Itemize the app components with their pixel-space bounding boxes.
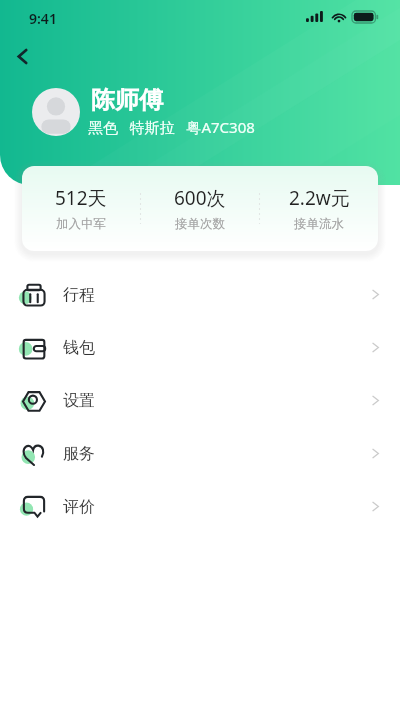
button[interactable]: 钱包	[0, 321, 400, 374]
staticText: 2.2w元	[289, 185, 350, 211]
staticText: 服务	[63, 444, 95, 464]
staticText: 9:41	[29, 9, 57, 28]
staticText: 600次	[174, 185, 226, 211]
button[interactable]: 设置	[0, 374, 400, 427]
button[interactable]: 评价	[0, 480, 400, 533]
staticText: 接单流水	[294, 216, 344, 232]
staticText: 512天	[55, 185, 107, 211]
button[interactable]: 服务	[0, 427, 400, 480]
staticText: 接单次数	[175, 216, 225, 232]
staticText: 行程	[63, 285, 95, 305]
staticText: 加入中军	[56, 216, 106, 232]
staticText: 陈师傅	[91, 85, 163, 115]
staticText: 评价	[63, 497, 95, 517]
staticText: 钱包	[63, 338, 95, 358]
button[interactable]: 行程	[0, 268, 400, 321]
staticText: 设置	[63, 391, 95, 411]
button[interactable]: Back	[7, 41, 37, 71]
staticText: 黑色 特斯拉 粤A7C308	[88, 117, 255, 137]
